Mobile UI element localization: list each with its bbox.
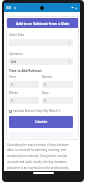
button[interactable]: Add [9, 58, 73, 65]
staticText: Time to Add/Subtract [9, 69, 42, 73]
button[interactable]: 0 [9, 97, 39, 104]
button[interactable]: 0 [42, 97, 73, 104]
staticText: 0 [44, 83, 46, 87]
staticText: Months [42, 75, 53, 79]
button[interactable]: 0 [9, 81, 39, 88]
staticText: Select Date [9, 33, 25, 37]
staticText: Years [9, 75, 17, 79]
button[interactable]: Add to or Subtract from a Date [7, 18, 79, 28]
staticText: Weeks [9, 91, 18, 95]
staticText: Days [42, 91, 49, 95]
staticText: 0 [44, 99, 46, 103]
staticText: 0 [11, 83, 13, 87]
staticText: Calculating the exact number of days bet… [7, 143, 71, 171]
button[interactable]: 0 [42, 81, 73, 88]
staticText: 0 [11, 99, 13, 103]
button[interactable]: Calculate [9, 116, 73, 128]
staticText: Calculate Business Days Only (Mon-Fri) [13, 109, 61, 113]
staticText: Operation [9, 52, 23, 56]
staticText: 9:41 [6, 6, 12, 10]
staticText: Add to or Subtract from a Date [16, 21, 70, 26]
staticText: Calculate [35, 120, 48, 124]
staticText: Add [11, 60, 17, 64]
button[interactable]: Calculate Business Days Only (Mon-Fri) [9, 109, 73, 113]
